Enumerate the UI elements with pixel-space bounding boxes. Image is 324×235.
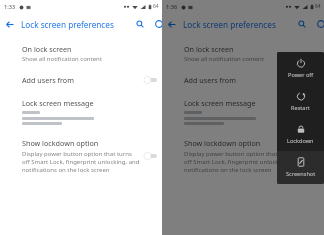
staticText: Display power button option that turns [184,150,294,158]
button[interactable]: Add users from lock screen [162,75,324,85]
other: Screenshot [296,157,306,167]
other: Restart [296,91,306,101]
staticText: notifications on the lock screen [22,166,110,174]
staticText: Lock screen message [184,98,256,108]
staticText: Add users from lock screen [22,75,82,85]
button[interactable]: Power off [277,52,324,85]
staticText: Screenshot [286,170,316,178]
button[interactable]: Add users from lock screen [0,75,162,85]
button[interactable]: Back [0,15,18,33]
staticText: notifications on the lock screen [184,166,272,174]
staticText: 1:33 [4,3,16,11]
staticText: Add users from lock screen [184,75,244,85]
staticText: 1:36 [166,3,178,11]
button[interactable]: Search [294,16,310,32]
staticText: off Smart Lock, fingerprint unlocking, a… [22,158,140,166]
button[interactable]: Help [151,16,167,32]
staticText: 64 [315,3,321,10]
button[interactable]: Lockdown [277,118,324,151]
button[interactable]: Restart [277,85,324,118]
staticText: Show lockdown option [184,138,261,148]
staticText: Lockdown [287,137,314,145]
staticText: Lock screen message [22,98,94,108]
staticText: 64 [153,3,159,10]
staticText: Power off [288,71,314,79]
button[interactable]: Screenshot [277,151,324,184]
button[interactable]: On lock screen [0,44,162,63]
staticText: Lock screen preferences [183,19,276,30]
other: Lockdown [296,124,306,134]
button[interactable]: Lock screen message [162,98,324,125]
staticText: Lock screen preferences [21,19,114,30]
button[interactable]: Show lockdown option [162,138,324,174]
button[interactable]: Help [313,16,324,32]
button[interactable]: Lock screen message [0,98,162,125]
staticText: Show all notification content [184,55,264,63]
staticText: off Smart Lock, fingerprint unlocking, a… [184,158,302,166]
button[interactable]: Search [132,16,148,32]
other: Power off [296,58,306,68]
staticText: On lock screen [22,44,72,54]
button[interactable]: On lock screen [162,44,324,63]
staticText: On lock screen [184,44,234,54]
button[interactable]: Show lockdown option [0,138,162,174]
button[interactable]: Back [162,15,180,33]
staticText: Show lockdown option [22,138,99,148]
staticText: Show all notification content [22,55,102,63]
staticText: Restart [291,104,310,112]
staticText: Display power button option that turns [22,150,132,158]
